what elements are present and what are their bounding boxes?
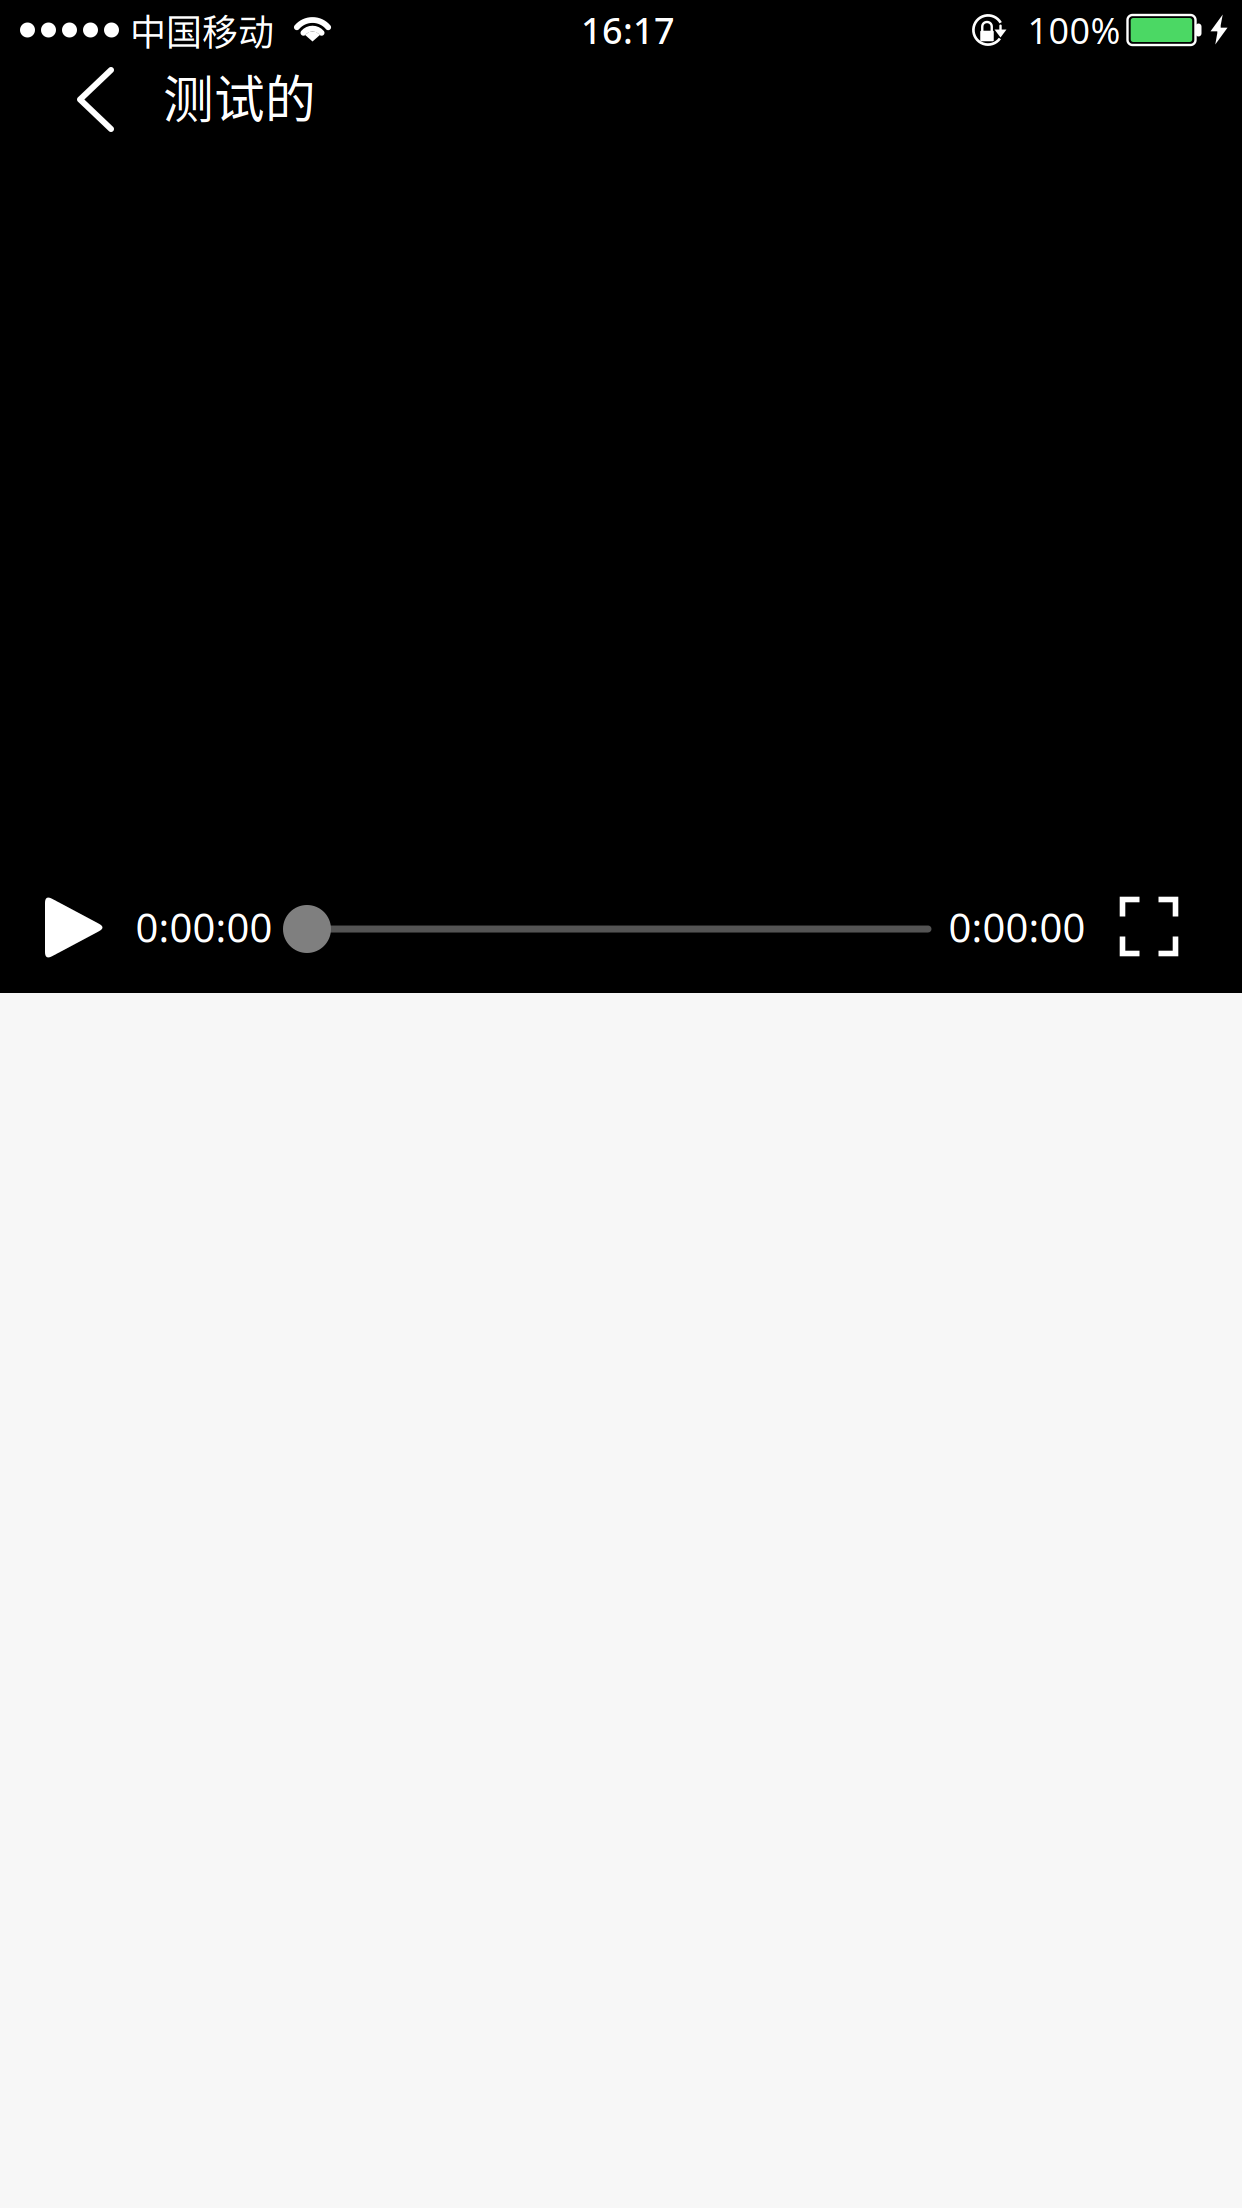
staticText: 中国移动 bbox=[130, 4, 274, 56]
button[interactable]: Play bbox=[20, 875, 130, 979]
staticText: 0:00:00 bbox=[135, 900, 272, 953]
button[interactable]: Back bbox=[35, 51, 155, 147]
staticText: 测试的 bbox=[163, 59, 316, 133]
staticText: 100% bbox=[1027, 6, 1120, 54]
button[interactable]: Full screen bbox=[1094, 874, 1204, 978]
staticText: 16:17 bbox=[581, 6, 675, 54]
button[interactable]: Scrubber bbox=[276, 897, 946, 961]
staticText: 0:00:00 bbox=[948, 900, 1085, 953]
